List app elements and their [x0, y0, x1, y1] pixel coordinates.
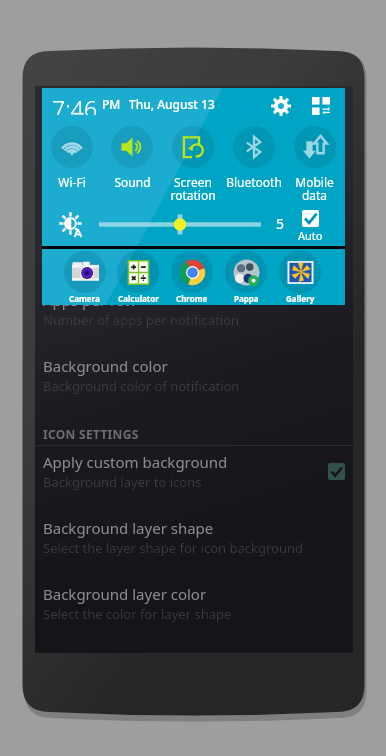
staticText: Select the layer shape for icon backgrou…: [43, 539, 303, 557]
button[interactable]: Calculator: [111, 249, 165, 305]
staticText: Background color of notification: [43, 377, 240, 395]
staticText: Gallery: [286, 293, 315, 304]
staticText: 7:46: [52, 93, 98, 115]
button[interactable]: Bluetooth: [223, 126, 284, 201]
staticText: Background layer color: [43, 584, 207, 604]
staticText: Mobile data: [295, 174, 334, 201]
staticText: Camera: [69, 293, 100, 304]
button[interactable]: Camera: [58, 249, 111, 305]
staticText: Wi-Fi: [58, 174, 86, 190]
button[interactable]: Chrome: [165, 249, 219, 305]
button[interactable]: Settings: [268, 93, 294, 119]
staticText: Number of apps per notification: [43, 311, 240, 329]
staticText: Select the color for layer shape: [43, 605, 232, 623]
staticText: Screen rotation: [170, 174, 216, 201]
staticText: Background color: [43, 356, 168, 376]
button[interactable]: Background layer color: [35, 581, 353, 625]
staticText: Background layer to icons: [43, 473, 202, 491]
button[interactable]: Sound: [102, 126, 162, 201]
staticText: 5: [276, 214, 285, 233]
button[interactable]: Apps per row: [35, 287, 353, 331]
staticText: Chrome: [176, 293, 208, 304]
staticText: Thu, August 13: [129, 96, 215, 112]
staticText: Pappa: [234, 293, 259, 304]
staticText: Background layer shape: [43, 518, 214, 538]
button[interactable]: Auto: [293, 210, 328, 243]
button[interactable]: Apply custom background: [35, 449, 353, 493]
staticText: Bluetooth: [226, 174, 282, 190]
staticText: Auto: [298, 228, 323, 243]
button[interactable]: Screen rotation: [162, 126, 223, 201]
button[interactable]: Brightness slider: [99, 214, 261, 235]
button[interactable]: Wi-Fi: [42, 126, 102, 201]
button[interactable]: Gallery: [273, 249, 327, 305]
staticText: Apply custom background: [43, 452, 228, 472]
staticText: Sound: [114, 174, 151, 190]
staticText: Calculator: [118, 293, 159, 304]
button[interactable]: Mobile data: [284, 126, 345, 201]
staticText: PM: [102, 96, 121, 112]
staticText: Apps per row: [43, 290, 137, 310]
staticText: ICON SETTINGS: [43, 426, 139, 442]
button[interactable]: Auto brightness: [59, 211, 85, 237]
button[interactable]: Edit quick settings: [308, 93, 334, 119]
button[interactable]: Background color: [35, 353, 353, 397]
button[interactable]: Pappa: [219, 249, 273, 305]
button[interactable]: Background layer shape: [35, 515, 353, 559]
